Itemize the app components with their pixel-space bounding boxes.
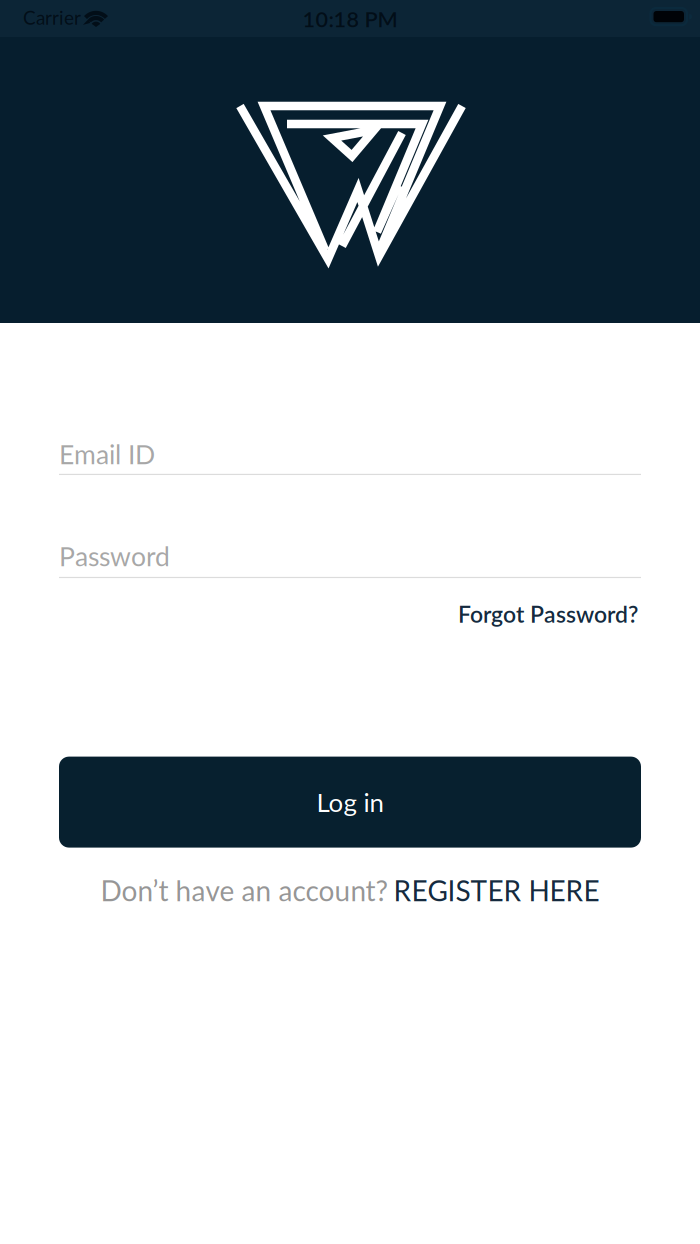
staticText: 10:18 PM [302,6,397,32]
button[interactable]: Password text field [59,540,641,578]
button[interactable]: Forgot Password? [458,600,638,628]
staticText: REGISTER HERE [393,874,599,907]
staticText: Don’t have an account? [100,874,388,907]
button[interactable]: REGISTER HERE [393,874,599,907]
staticText: Forgot Password? [458,600,638,628]
staticText: Password [59,540,170,572]
staticText: Email ID [59,438,155,470]
staticText: Carrier [23,6,81,29]
button[interactable]: Log in [59,757,641,848]
button[interactable]: Email ID text field [59,438,641,475]
staticText: Log in [316,787,383,818]
